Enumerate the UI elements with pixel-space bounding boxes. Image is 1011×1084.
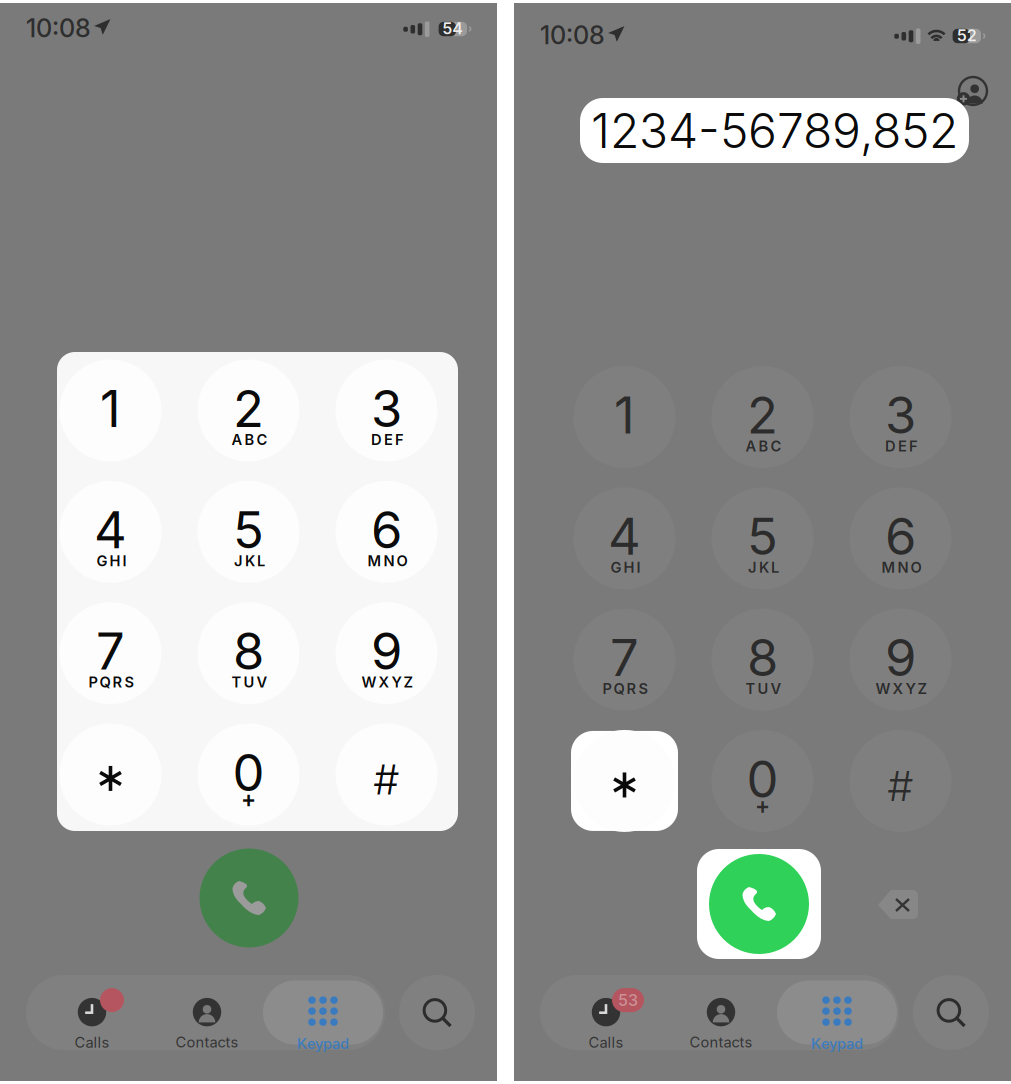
staticText: TUV xyxy=(745,680,781,697)
staticText: 10:08 xyxy=(540,20,605,50)
button[interactable]: 8 xyxy=(197,602,299,704)
button[interactable]: Keypad xyxy=(777,981,897,1043)
staticText: 3 xyxy=(371,378,402,439)
button[interactable]: 0 xyxy=(711,730,813,832)
staticText: 3 xyxy=(885,384,916,446)
staticText: 5 xyxy=(747,506,778,567)
button[interactable]: 7 xyxy=(573,609,675,711)
staticText: ABC xyxy=(745,437,781,455)
staticText: # xyxy=(888,761,913,811)
staticText: 54 xyxy=(442,19,463,38)
staticText: JKL xyxy=(748,558,779,576)
button[interactable]: 6 xyxy=(335,481,437,583)
button[interactable] xyxy=(573,730,675,832)
staticText: 10:08 xyxy=(26,13,91,43)
staticText: 7 xyxy=(96,620,125,682)
staticText: 2 xyxy=(233,378,264,439)
staticText: 8 xyxy=(747,627,778,688)
staticText: Calls xyxy=(588,1034,623,1051)
staticText: Keypad xyxy=(811,1035,863,1053)
staticText: 9 xyxy=(371,620,402,682)
staticText: + xyxy=(755,792,770,820)
staticText: MNO xyxy=(367,552,407,570)
staticText: 9 xyxy=(885,627,916,688)
button[interactable]: 8 xyxy=(711,609,813,711)
staticText: GHI xyxy=(96,552,126,570)
staticText: PQRS xyxy=(602,680,648,697)
staticText: 7 xyxy=(610,627,639,688)
button[interactable]: Search xyxy=(913,975,989,1050)
button[interactable]: # xyxy=(849,730,951,832)
button[interactable]: 2 xyxy=(197,360,299,462)
button[interactable]: 4 xyxy=(59,481,161,583)
staticText: 4 xyxy=(608,506,641,567)
button[interactable]: Call xyxy=(697,849,821,959)
staticText: # xyxy=(374,754,399,804)
staticText: 6 xyxy=(885,506,916,567)
button[interactable]: 1234-56789,852 xyxy=(580,98,969,163)
button[interactable]: 3 xyxy=(335,360,437,462)
staticText: Keypad xyxy=(297,1035,349,1053)
staticText: 5 xyxy=(233,499,264,560)
button[interactable]: Contacts xyxy=(157,981,257,1043)
staticText: 53 xyxy=(618,990,638,1010)
button[interactable] xyxy=(59,723,161,825)
staticText: 1234-56789,852 xyxy=(591,101,958,160)
staticText: 0 xyxy=(746,748,778,810)
staticText: Calls xyxy=(74,1034,109,1051)
staticText: JKL xyxy=(234,552,265,570)
staticText: WXYZ xyxy=(361,673,413,691)
staticText: 1 xyxy=(100,378,121,439)
button[interactable]: 4 xyxy=(573,487,675,589)
button[interactable]: 53 xyxy=(556,981,656,1043)
button[interactable]: 9 xyxy=(849,609,951,711)
button[interactable]: # xyxy=(335,723,437,825)
button[interactable]: 3 xyxy=(849,366,951,468)
button[interactable]: 0 xyxy=(197,723,299,825)
button[interactable]: Add contact xyxy=(951,69,995,113)
staticText: MNO xyxy=(881,558,921,576)
staticText: TUV xyxy=(231,673,267,691)
button[interactable]: Contacts xyxy=(671,981,771,1043)
staticText: 2 xyxy=(747,384,778,446)
button[interactable]: Delete xyxy=(878,890,918,919)
button[interactable]: 6 xyxy=(849,487,951,589)
staticText: 4 xyxy=(94,499,127,560)
staticText: ABC xyxy=(231,431,267,448)
staticText: PQRS xyxy=(88,673,134,691)
button[interactable]: 1 xyxy=(573,366,675,468)
button[interactable]: 9 xyxy=(335,602,437,704)
staticText: Contacts xyxy=(689,1033,752,1051)
button[interactable]: Call xyxy=(199,848,298,947)
button[interactable]: 5 xyxy=(197,481,299,583)
button[interactable]: Calls xyxy=(42,981,142,1043)
staticText: DEF xyxy=(371,431,404,448)
staticText: 8 xyxy=(233,620,264,682)
staticText: WXYZ xyxy=(875,680,927,697)
staticText: + xyxy=(241,786,256,813)
staticText: DEF xyxy=(885,437,918,455)
button[interactable]: 2 xyxy=(711,366,813,468)
button[interactable]: Search xyxy=(399,975,475,1050)
button[interactable]: 7 xyxy=(59,602,161,704)
staticText: Contacts xyxy=(175,1033,238,1051)
staticText: 52 xyxy=(957,26,977,45)
staticText: 0 xyxy=(232,742,264,803)
staticText: GHI xyxy=(610,558,640,576)
button[interactable]: Keypad xyxy=(263,981,383,1043)
button[interactable]: 5 xyxy=(711,487,813,589)
button[interactable]: 1 xyxy=(59,360,161,462)
staticText: 1 xyxy=(614,384,635,446)
staticText: 6 xyxy=(371,499,402,560)
